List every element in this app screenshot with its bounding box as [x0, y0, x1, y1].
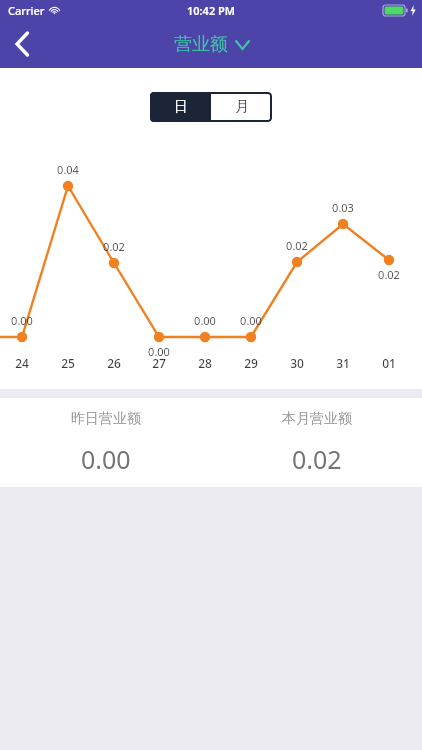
staticText: 10:42 PM: [187, 3, 236, 18]
staticText: 0.03: [332, 200, 354, 215]
staticText: 0.02: [292, 442, 342, 476]
staticText: 营业额: [174, 33, 228, 56]
staticText: 27: [152, 355, 166, 371]
button[interactable]: 昨日营业额: [0, 398, 211, 487]
staticText: 0.00: [81, 442, 131, 476]
button[interactable]: Back: [0, 22, 44, 66]
staticText: 0.00: [11, 313, 33, 328]
staticText: 昨日营业额: [71, 410, 141, 428]
staticText: 01: [382, 355, 396, 371]
staticText: 日: [174, 98, 188, 116]
staticText: 28: [198, 355, 212, 371]
staticText: 0.02: [286, 238, 308, 253]
staticText: 26: [107, 355, 121, 371]
staticText: 0.00: [240, 313, 262, 328]
button[interactable]: 本月营业额: [211, 398, 422, 487]
staticText: 本月营业额: [282, 410, 352, 428]
staticText: 月: [235, 98, 249, 116]
staticText: 29: [244, 355, 258, 371]
button[interactable]: 营业额: [174, 33, 249, 56]
staticText: Carrier: [8, 3, 45, 18]
staticText: 0.04: [57, 162, 79, 177]
staticText: 0.00: [194, 313, 216, 328]
staticText: 30: [290, 355, 304, 371]
staticText: 25: [61, 355, 75, 371]
button[interactable]: 月: [211, 92, 272, 122]
staticText: 0.02: [378, 267, 400, 282]
staticText: 0.02: [103, 239, 125, 254]
button[interactable]: 日: [150, 92, 211, 122]
staticText: 0.00: [148, 344, 170, 359]
staticText: 31: [336, 355, 350, 371]
staticText: 24: [15, 355, 29, 371]
